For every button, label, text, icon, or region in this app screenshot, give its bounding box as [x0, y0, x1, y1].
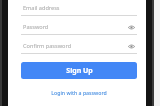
button[interactable]: Confirm password [21, 39, 137, 54]
staticText: Email address [23, 4, 60, 12]
button[interactable]: Show password [127, 42, 136, 51]
staticText: Confirm password [23, 42, 72, 50]
staticText: Password [23, 23, 49, 31]
button[interactable]: Show password [127, 23, 136, 32]
button[interactable]: Sign Up [21, 62, 137, 79]
staticText: Login with a password [51, 89, 107, 96]
staticText: Sign Up [66, 66, 93, 76]
button[interactable]: Password [21, 20, 137, 35]
button[interactable]: Login with a password [21, 87, 137, 97]
button[interactable]: Email address [21, 1, 137, 16]
